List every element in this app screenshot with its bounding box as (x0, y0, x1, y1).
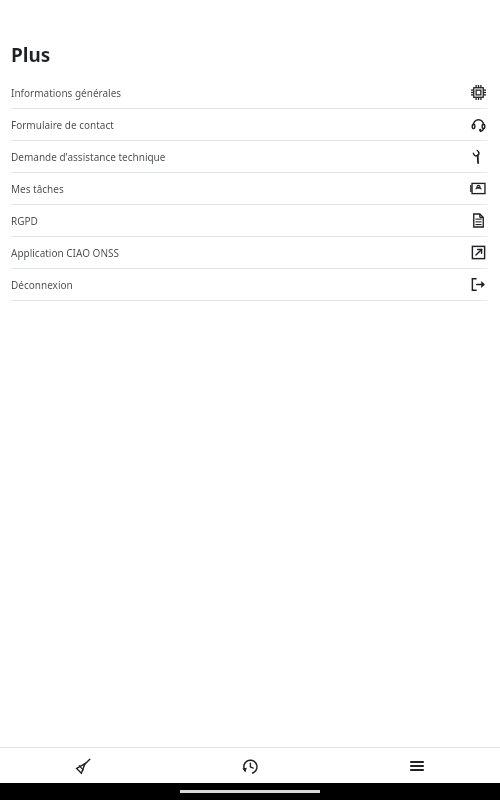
button[interactable]: Menu (333, 748, 500, 783)
staticText: Informations générales (11, 86, 470, 100)
staticText: Plus (11, 42, 51, 68)
button[interactable]: RGPD (0, 205, 500, 236)
button[interactable]: Nettoyer (0, 748, 166, 783)
button[interactable]: Informations générales (0, 77, 500, 108)
button[interactable]: Demande d'assistance technique (0, 141, 500, 172)
button[interactable]: Historique (166, 748, 333, 783)
staticText: RGPD (11, 214, 470, 228)
staticText: Application CIAO ONSS (11, 246, 470, 260)
staticText: Déconnexion (11, 278, 470, 292)
staticText: Formulaire de contact (11, 118, 470, 132)
button[interactable]: Application CIAO ONSS (0, 237, 500, 268)
button[interactable]: Formulaire de contact (0, 109, 500, 140)
button[interactable]: Mes tâches (0, 173, 500, 204)
staticText: Demande d'assistance technique (11, 150, 470, 164)
staticText: Mes tâches (11, 182, 470, 196)
button[interactable]: Déconnexion (0, 269, 500, 300)
